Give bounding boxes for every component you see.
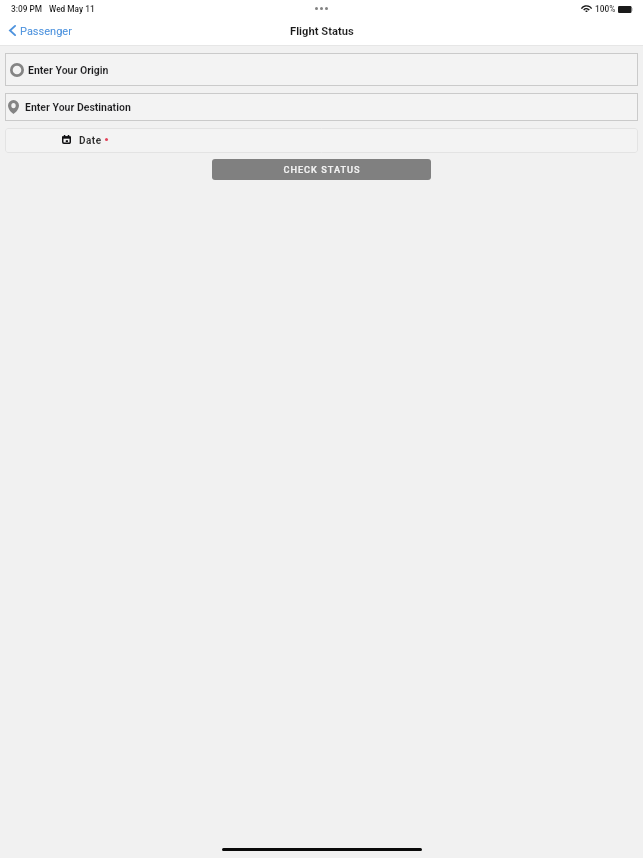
other: Home indicator [0,842,643,858]
staticText: Date [79,135,102,147]
button[interactable]: Back to Passenger [0,20,82,43]
staticText: CHECK STATUS [283,164,361,175]
staticText: Flight Status [290,25,354,38]
staticText: 100% [595,4,616,14]
staticText: Passenger [20,25,72,38]
staticText: Wed May 11 [49,4,95,14]
button[interactable]: CHECK STATUS [212,159,431,180]
button[interactable]: Enter Your Origin [5,53,638,86]
staticText: 3:09 PM [11,4,43,14]
button[interactable]: Enter Your Destination [5,93,638,121]
staticText: Enter Your Destination [25,101,131,113]
button[interactable]: Date [5,128,638,153]
staticText: Enter Your Origin [28,64,109,76]
